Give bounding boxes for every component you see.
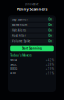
button[interactable]: Float Filter [10,34,54,38]
staticText: Innovative [25,2,39,6]
staticText: Penny Scanners [16,6,47,12]
button[interactable]: ATER [10,72,54,75]
button[interactable]: BBIG [10,68,54,70]
button[interactable]: NKLA [10,59,54,62]
staticText: SNDL [10,63,16,66]
staticText: On [48,29,52,32]
button[interactable]: Start Scanning [10,46,54,51]
staticText: Today's Movers [10,54,31,57]
staticText: Start Scanning [22,47,42,50]
button[interactable]: Gap Scanner [10,17,54,22]
button[interactable]: Halt Alerts [10,28,54,32]
button[interactable]: Momentum [10,23,54,27]
staticText: +19% [46,67,54,71]
staticText: Halt Alerts [12,29,26,32]
staticText: ATER [10,72,16,75]
staticText: +11% [46,72,54,75]
staticText: On [48,39,52,43]
staticText: On [48,18,52,21]
button[interactable]: Volume Spike [10,39,54,43]
staticText: On [48,23,52,27]
staticText: Volume Spike [12,39,31,43]
staticText: NKLA [10,58,17,62]
staticText: Float Filter [12,34,26,37]
button[interactable]: SNDL [10,63,54,66]
staticText: +42% [46,58,54,62]
staticText: BBIG [10,67,17,71]
staticText: Gap Scanner [12,18,28,21]
staticText: Momentum [12,23,27,27]
staticText: On [48,34,52,37]
staticText: +28% [46,63,54,66]
